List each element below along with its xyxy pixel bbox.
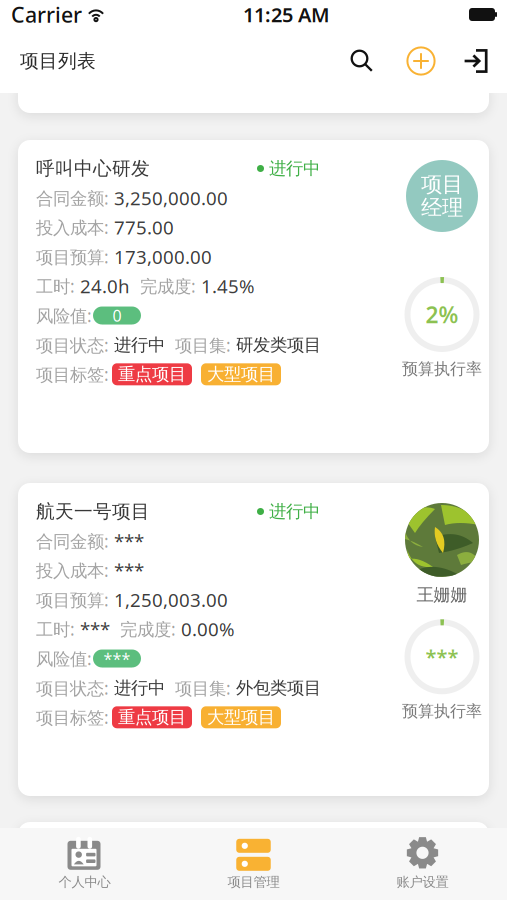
staticText: 1,250,003.00 <box>114 587 228 612</box>
staticText: *** <box>425 643 458 670</box>
button[interactable]: 个人中心 <box>0 825 169 900</box>
staticText: 项目标签: <box>36 706 109 729</box>
button[interactable]: 账户设置 <box>338 825 507 900</box>
staticText: 项目 <box>421 171 463 197</box>
staticText: 3,250,000.00 <box>114 185 228 210</box>
staticText: 项目管理 <box>227 874 279 890</box>
staticText: 进行中 <box>264 158 320 179</box>
staticText: 研发类项目 <box>236 334 321 356</box>
staticText: 预算执行率 <box>402 701 482 721</box>
staticText: 投入成本: <box>36 559 114 582</box>
staticText: 项目列表 <box>20 49 96 72</box>
staticText: *** <box>114 528 144 553</box>
staticText: 项目预算: <box>36 588 114 611</box>
staticText: 经理 <box>421 194 463 221</box>
staticText: 账户设置 <box>396 874 448 890</box>
staticText: 0 <box>112 305 121 326</box>
staticText: 进行中 <box>264 501 320 522</box>
staticText: 重点项目 <box>118 707 186 728</box>
staticText: 风险值: <box>36 304 92 327</box>
staticText: 2% <box>425 299 458 329</box>
staticText: 完成度: <box>110 618 181 641</box>
staticText: 项目预算: <box>36 245 114 268</box>
button[interactable]: Sign out <box>453 32 497 90</box>
staticText: 24.0h <box>80 274 130 298</box>
staticText: 王姗姗 <box>416 584 467 605</box>
staticText: 项目状态: <box>36 676 114 699</box>
staticText: 项目集: <box>165 333 236 356</box>
staticText: 项目标签: <box>36 363 109 386</box>
staticText: 项目状态: <box>36 333 114 356</box>
staticText: 合同金额: <box>36 186 114 209</box>
staticText: 呼叫中心研发 <box>36 157 150 180</box>
staticText: 大型项目 <box>207 364 275 385</box>
button[interactable]: Search <box>338 32 386 90</box>
staticText: 0.00% <box>181 617 235 641</box>
staticText: 工时: <box>36 618 80 641</box>
staticText: *** <box>114 558 144 583</box>
staticText: 完成度: <box>130 275 201 298</box>
staticText: 173,000.00 <box>114 244 212 269</box>
staticText: 11:25 AM <box>243 1 330 28</box>
staticText: 工时: <box>36 275 80 298</box>
staticText: 775.00 <box>114 215 174 240</box>
staticText: 进行中 <box>114 677 165 699</box>
staticText: 航天一号项目 <box>36 500 150 523</box>
staticText: 大型项目 <box>207 707 275 728</box>
staticText: 预算执行率 <box>402 359 482 379</box>
staticText: 个人中心 <box>58 874 110 890</box>
button[interactable]: 项目管理 <box>169 825 338 900</box>
staticText: *** <box>80 617 110 641</box>
staticText: 重点项目 <box>118 364 186 385</box>
staticText: 外包类项目 <box>236 677 321 699</box>
staticText: 投入成本: <box>36 216 114 239</box>
staticText: 项目集: <box>165 676 236 699</box>
staticText: 风险值: <box>36 647 92 670</box>
staticText: *** <box>103 648 130 669</box>
staticText: 进行中 <box>114 334 165 356</box>
button[interactable]: Add project <box>399 32 443 90</box>
staticText: Carrier <box>11 0 82 29</box>
staticText: 合同金额: <box>36 529 114 552</box>
staticText: 1.45% <box>201 274 255 298</box>
